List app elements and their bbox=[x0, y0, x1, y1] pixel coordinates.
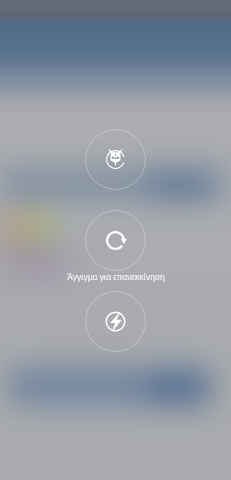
button[interactable]: Emergency bbox=[85, 291, 146, 352]
staticText: Άγγιγμα για επανεκκίνηση bbox=[67, 271, 165, 282]
button[interactable]: Power off bbox=[85, 129, 146, 190]
button[interactable]: Restart bbox=[85, 210, 146, 271]
